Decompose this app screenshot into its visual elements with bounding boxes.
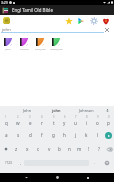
button[interactable]: 8 xyxy=(81,114,92,128)
staticText: john xyxy=(2,27,11,33)
staticText: 2 xyxy=(17,115,19,119)
staticText: h xyxy=(63,132,66,138)
button[interactable]: Three John xyxy=(48,38,64,50)
staticText: 8 xyxy=(86,115,88,119)
staticText: z xyxy=(15,146,18,152)
staticText: Two John xyxy=(35,47,46,50)
staticText: , xyxy=(20,160,22,166)
staticText: w xyxy=(16,120,20,126)
button[interactable]: Search xyxy=(105,132,112,139)
staticText: j xyxy=(75,132,77,138)
staticText: m xyxy=(77,146,82,152)
button[interactable]: Voice input xyxy=(101,106,114,114)
button[interactable]: ! xyxy=(84,142,94,156)
staticText: x xyxy=(26,146,29,152)
staticText: t xyxy=(53,120,55,126)
button[interactable]: John xyxy=(0,38,16,50)
staticText: Engl Tamil Old Bible xyxy=(12,7,53,13)
button[interactable]: s xyxy=(12,128,24,142)
button[interactable]: Exodus xyxy=(16,38,32,50)
button[interactable]: v xyxy=(44,142,54,156)
button[interactable]: , xyxy=(17,156,24,170)
button[interactable]: x xyxy=(22,142,33,156)
button[interactable]: Rate this app xyxy=(102,17,110,25)
button[interactable]: Emoji xyxy=(100,156,114,170)
button[interactable]: c xyxy=(33,142,44,156)
staticText: Exodus xyxy=(20,47,29,50)
button[interactable]: k xyxy=(81,128,92,142)
button[interactable]: Johnson xyxy=(72,106,101,114)
staticText: l xyxy=(97,132,99,138)
button[interactable]: 3 xyxy=(24,114,36,128)
staticText: q xyxy=(5,120,8,126)
button[interactable]: Home xyxy=(53,173,62,182)
staticText: s xyxy=(17,132,20,138)
staticText: 1 xyxy=(5,115,7,119)
button[interactable]: Favourites xyxy=(65,17,73,25)
staticText: Johnson xyxy=(79,108,94,113)
button[interactable]: 5 xyxy=(48,114,59,128)
staticText: 7 xyxy=(75,115,77,119)
staticText: a xyxy=(5,132,8,138)
button[interactable]: Backspace xyxy=(104,142,114,156)
staticText: e xyxy=(29,120,32,126)
button[interactable]: Two John xyxy=(32,38,48,50)
staticText: b xyxy=(58,146,61,152)
staticText: y xyxy=(63,120,66,126)
staticText: ?123 xyxy=(5,161,12,165)
staticText: Three John xyxy=(50,47,63,50)
staticText: p xyxy=(107,120,110,126)
staticText: g xyxy=(52,132,55,138)
button[interactable]: a xyxy=(0,128,12,142)
button[interactable]: h xyxy=(59,128,70,142)
staticText: 3 xyxy=(29,115,31,119)
button[interactable]: ? xyxy=(94,142,104,156)
button[interactable]: Settings xyxy=(90,17,98,25)
button[interactable]: john xyxy=(42,106,71,114)
button[interactable]: ?123 xyxy=(0,156,17,170)
button[interactable]: Clear search xyxy=(102,25,112,35)
staticText: n xyxy=(68,146,71,152)
staticText: k xyxy=(85,132,88,138)
button[interactable]: d xyxy=(24,128,36,142)
staticText: v xyxy=(48,146,51,152)
staticText: ? xyxy=(98,146,100,152)
button[interactable]: 1 xyxy=(0,114,12,128)
button[interactable]: 9 xyxy=(92,114,103,128)
staticText: 6 xyxy=(64,115,66,119)
button[interactable]: n xyxy=(64,142,74,156)
button[interactable]: Recent apps xyxy=(83,173,92,182)
staticText: John xyxy=(23,108,32,113)
button[interactable]: 0 xyxy=(103,114,114,128)
button[interactable]: 6 xyxy=(59,114,70,128)
staticText: u xyxy=(74,120,77,126)
staticText: 3:29 xyxy=(1,0,8,5)
button[interactable]: l xyxy=(92,128,103,142)
button[interactable]: m xyxy=(74,142,84,156)
staticText: john xyxy=(52,108,61,113)
button[interactable]: 7 xyxy=(70,114,81,128)
button[interactable]: 2 xyxy=(12,114,24,128)
button[interactable]: Play Store xyxy=(77,17,85,25)
button[interactable]: f xyxy=(36,128,48,142)
button[interactable]: b xyxy=(54,142,64,156)
staticText: 4 xyxy=(41,115,43,119)
button[interactable]: Back xyxy=(22,173,31,182)
staticText: ! xyxy=(88,146,90,152)
button[interactable]: 4 xyxy=(36,114,48,128)
staticText: 0 xyxy=(108,115,110,119)
staticText: f xyxy=(41,132,43,138)
button[interactable]: j xyxy=(70,128,81,142)
button[interactable]: Shift xyxy=(0,142,11,156)
button[interactable]: John xyxy=(13,106,42,114)
staticText: 9 xyxy=(97,115,99,119)
button[interactable]: z xyxy=(11,142,22,156)
staticText: d xyxy=(29,132,32,138)
button[interactable]: g xyxy=(48,128,59,142)
button[interactable]: Notes xyxy=(3,17,10,24)
staticText: o xyxy=(96,120,99,126)
staticText: i xyxy=(86,120,88,126)
staticText: c xyxy=(37,146,40,152)
